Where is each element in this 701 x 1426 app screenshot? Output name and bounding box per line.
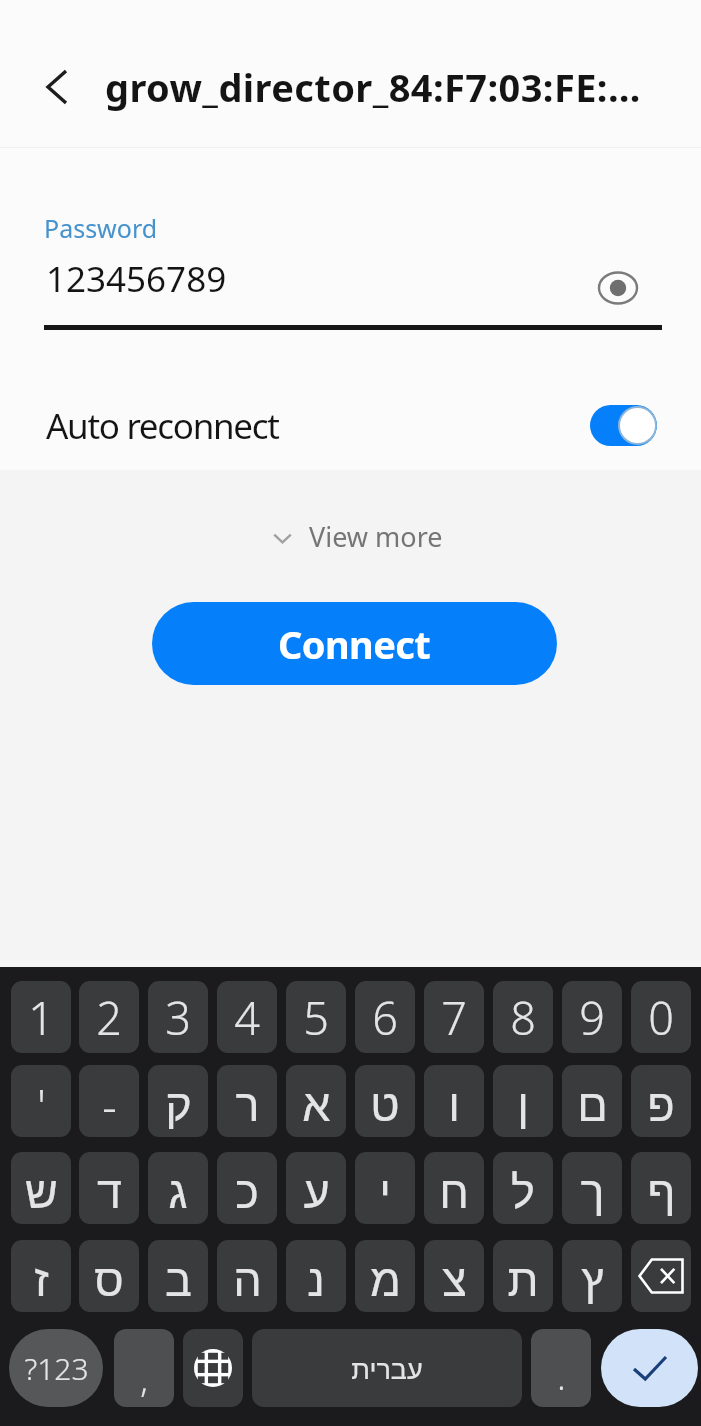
button[interactable]: View more	[265, 508, 451, 568]
button[interactable]: א	[286, 1065, 346, 1137]
staticText: ף	[647, 1167, 676, 1217]
staticText: ק	[165, 1080, 192, 1130]
staticText: ץ	[581, 1255, 604, 1305]
staticText: Connect	[278, 618, 431, 670]
staticText: 5	[303, 987, 329, 1048]
staticText: 8	[510, 987, 536, 1048]
button[interactable]: מ	[355, 1240, 415, 1312]
button[interactable]: Connect	[152, 602, 557, 685]
button[interactable]: ן	[493, 1065, 553, 1137]
button[interactable]: ע	[286, 1152, 346, 1224]
staticText: ב	[165, 1255, 192, 1305]
staticText: 3	[165, 987, 191, 1048]
staticText: ת	[507, 1255, 539, 1305]
button[interactable]: ט	[355, 1065, 415, 1137]
button[interactable]: ה	[217, 1240, 277, 1312]
button[interactable]: ץ	[562, 1240, 622, 1312]
staticText: כ	[235, 1167, 259, 1217]
staticText: ע	[303, 1167, 330, 1217]
button[interactable]: ר	[217, 1065, 277, 1137]
button[interactable]: Backspace	[631, 1240, 691, 1312]
staticText: 0	[648, 987, 674, 1048]
button[interactable]: ף	[631, 1152, 691, 1224]
button[interactable]: ד	[79, 1152, 139, 1224]
button[interactable]: ,	[114, 1329, 174, 1407]
staticText: 2	[96, 987, 122, 1048]
staticText: 6	[372, 987, 398, 1048]
staticText: 9	[579, 987, 605, 1048]
button[interactable]: ו	[424, 1065, 484, 1137]
button[interactable]: ?123	[9, 1329, 103, 1407]
staticText: 4	[234, 987, 260, 1048]
button[interactable]: 2	[79, 981, 139, 1053]
button[interactable]: ת	[493, 1240, 553, 1312]
staticText: מ	[370, 1255, 401, 1305]
staticText: Password	[44, 211, 158, 245]
staticText: ה	[233, 1255, 262, 1305]
button[interactable]: Back	[33, 63, 81, 111]
button[interactable]: צ	[424, 1240, 484, 1312]
staticText: ש	[25, 1167, 58, 1217]
button[interactable]: 1	[11, 981, 71, 1053]
staticText: פ	[647, 1080, 675, 1130]
button[interactable]: 4	[217, 981, 277, 1053]
button[interactable]: .	[531, 1329, 591, 1407]
button[interactable]: Auto reconnect	[0, 382, 701, 468]
button[interactable]: Enter	[601, 1329, 698, 1407]
staticText: ך	[580, 1167, 605, 1217]
button[interactable]: -	[79, 1065, 139, 1137]
button[interactable]: ז	[11, 1240, 71, 1312]
staticText: ,	[140, 1356, 148, 1402]
staticText: 1	[28, 987, 54, 1048]
button[interactable]: ל	[493, 1152, 553, 1224]
button[interactable]: ם	[562, 1065, 622, 1137]
staticText: ס	[94, 1255, 124, 1305]
staticText: צ	[442, 1255, 467, 1305]
button[interactable]: י	[355, 1152, 415, 1224]
staticText: View more	[309, 518, 443, 555]
button[interactable]: ס	[79, 1240, 139, 1312]
staticText: ג	[168, 1167, 188, 1217]
staticText: ?123	[24, 1348, 89, 1389]
button[interactable]: ך	[562, 1152, 622, 1224]
button[interactable]: ש	[11, 1152, 71, 1224]
staticText: י	[379, 1167, 391, 1217]
button[interactable]: ח	[424, 1152, 484, 1224]
staticText: 123456789	[46, 255, 227, 303]
button[interactable]: נ	[286, 1240, 346, 1312]
button[interactable]: 0	[631, 981, 691, 1053]
button[interactable]: Show password	[592, 262, 644, 314]
staticText: ח	[439, 1167, 469, 1217]
staticText: ר	[235, 1080, 260, 1130]
staticText: grow_director_84:F7:03:FE:…	[105, 61, 641, 113]
button[interactable]: ג	[148, 1152, 208, 1224]
staticText: ו	[448, 1080, 460, 1130]
button[interactable]: Change language	[183, 1329, 243, 1407]
button[interactable]: 5	[286, 981, 346, 1053]
staticText: ל	[511, 1167, 535, 1217]
staticText: ם	[577, 1080, 608, 1130]
button[interactable]: 9	[562, 981, 622, 1053]
button[interactable]: 6	[355, 981, 415, 1053]
staticText: 7	[441, 987, 467, 1048]
staticText: Auto reconnect	[46, 402, 279, 450]
staticText: .	[557, 1354, 566, 1400]
button[interactable]: '	[11, 1065, 71, 1137]
staticText: א	[302, 1080, 331, 1130]
button[interactable]: כ	[217, 1152, 277, 1224]
staticText: נ	[307, 1255, 325, 1305]
staticText: עברית	[351, 1355, 423, 1385]
button[interactable]: עברית	[252, 1329, 522, 1407]
staticText: ז	[34, 1255, 49, 1305]
staticText: '	[37, 1075, 46, 1136]
button[interactable]: ב	[148, 1240, 208, 1312]
staticText: -	[102, 1075, 117, 1136]
staticText: ד	[97, 1167, 122, 1217]
button[interactable]: 7	[424, 981, 484, 1053]
button[interactable]: ק	[148, 1065, 208, 1137]
button[interactable]: 3	[148, 981, 208, 1053]
staticText: ט	[370, 1080, 400, 1130]
button[interactable]: פ	[631, 1065, 691, 1137]
button[interactable]: 8	[493, 981, 553, 1053]
staticText: ן	[517, 1080, 529, 1130]
